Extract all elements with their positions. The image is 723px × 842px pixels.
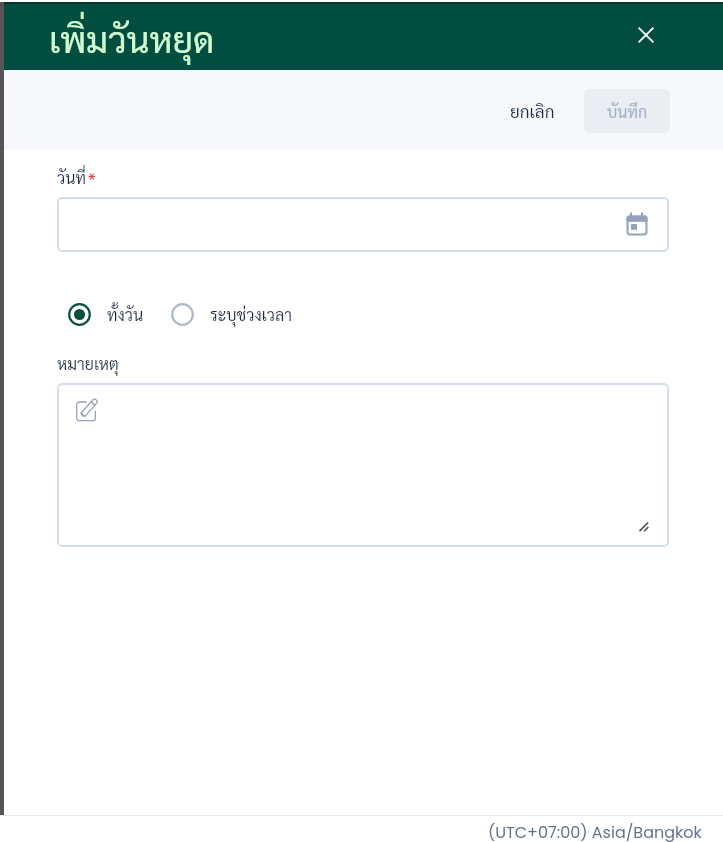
button[interactable]: ทั้งวัน bbox=[68, 303, 144, 326]
staticText: บันทึก bbox=[607, 101, 648, 122]
button[interactable] bbox=[57, 197, 669, 252]
staticText: (UTC+07:00) Asia/Bangkok bbox=[488, 821, 702, 842]
staticText: ระบุช่วงเวลา bbox=[210, 304, 292, 325]
button[interactable]: Close bbox=[626, 15, 666, 55]
staticText: ยกเลิก bbox=[510, 100, 555, 122]
staticText: เพิ่มวันหยุด bbox=[49, 15, 215, 62]
button[interactable]: ยกเลิก bbox=[494, 89, 571, 133]
staticText: หมายเหตุ bbox=[57, 353, 119, 374]
staticText: วันที่ bbox=[57, 167, 86, 188]
button[interactable] bbox=[57, 383, 669, 547]
button[interactable]: บันทึก bbox=[584, 89, 670, 133]
staticText: * bbox=[88, 168, 96, 190]
button[interactable]: ระบุช่วงเวลา bbox=[171, 303, 292, 326]
staticText: ทั้งวัน bbox=[107, 304, 144, 325]
